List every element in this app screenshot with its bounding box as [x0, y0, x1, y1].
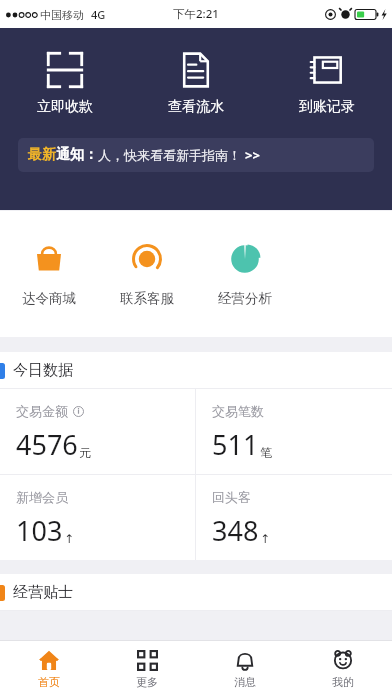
- button[interactable]: 查看流水: [130, 45, 261, 122]
- button[interactable]: 回头客: [196, 475, 392, 560]
- staticText: 元: [79, 445, 91, 460]
- button[interactable]: 消息: [196, 641, 294, 696]
- button[interactable]: 交易金额: [0, 389, 195, 474]
- staticText: 交易笔数: [212, 403, 264, 419]
- staticText: ↑: [260, 532, 271, 546]
- staticText: 首页: [38, 675, 60, 689]
- staticText: 经营贴士: [13, 583, 73, 602]
- staticText: 联系客服: [120, 290, 174, 307]
- staticText: ↑: [64, 532, 75, 546]
- staticText: 348: [212, 512, 259, 549]
- staticText: 511: [212, 426, 259, 463]
- button[interactable]: 更多: [98, 641, 196, 696]
- staticText: 到账记录: [299, 98, 355, 116]
- button[interactable]: 到账记录: [261, 45, 392, 122]
- staticText: 103: [16, 512, 63, 549]
- staticText: 经营分析: [218, 290, 272, 307]
- staticText: 达令商城: [22, 290, 76, 307]
- staticText: 4G: [91, 7, 106, 22]
- staticText: 查看流水: [168, 98, 224, 116]
- button[interactable]: 新增会员: [0, 475, 195, 560]
- button[interactable]: 联系客服: [98, 234, 196, 315]
- staticText: 今日数据: [13, 361, 73, 380]
- button[interactable]: 我的: [294, 641, 392, 696]
- staticText: 更多: [136, 675, 158, 689]
- staticText: 立即收款: [37, 98, 93, 116]
- staticText: 笔: [260, 445, 272, 460]
- staticText: 新增会员: [16, 489, 68, 505]
- staticText: 下午2:21: [173, 6, 219, 22]
- staticText: >>: [245, 146, 260, 164]
- button[interactable]: 经营分析: [196, 234, 294, 315]
- staticText: 4576: [16, 426, 78, 463]
- button[interactable]: 达令商城: [0, 234, 98, 315]
- button[interactable]: 首页: [0, 641, 98, 696]
- staticText: 消息: [234, 675, 256, 689]
- staticText: 中国移动: [40, 8, 84, 22]
- button[interactable]: 交易笔数: [196, 389, 392, 474]
- staticText: 回头客: [212, 489, 251, 505]
- button[interactable]: 最新: [18, 138, 374, 172]
- staticText: 最新: [28, 146, 56, 164]
- staticText: 人，快来看看新手指南！: [98, 147, 241, 163]
- button[interactable]: 立即收款: [0, 45, 130, 122]
- staticText: 通知：: [56, 146, 98, 164]
- staticText: 我的: [332, 675, 354, 689]
- staticText: 交易金额: [16, 403, 68, 419]
